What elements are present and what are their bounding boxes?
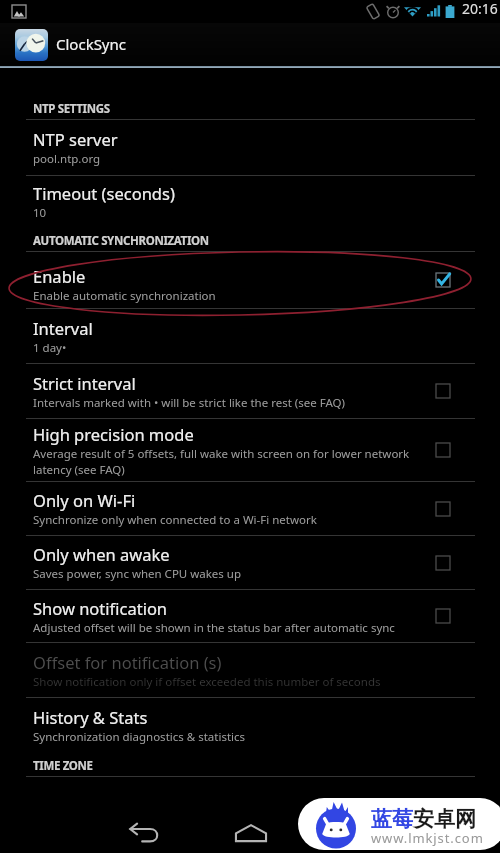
staticText: TIME ZONE <box>33 758 93 774</box>
button[interactable]: Only when awake <box>436 536 500 589</box>
staticText: Saves power, sync when CPU wakes up <box>33 566 242 582</box>
button[interactable]: Timeout (seconds) <box>0 176 500 227</box>
staticText: Timeout (seconds) <box>33 182 175 204</box>
staticText: NTP SETTINGS <box>33 101 110 117</box>
button[interactable]: Only on Wi-Fi <box>436 482 500 535</box>
button[interactable]: Back <box>116 812 172 853</box>
staticText: High precision mode <box>33 423 194 445</box>
button[interactable]: Home <box>223 812 279 853</box>
staticText: 10 <box>33 205 47 221</box>
button[interactable]: Only when awake <box>0 536 500 589</box>
staticText: 蓝莓 <box>371 806 413 832</box>
staticText: Average result of 5 offsets, full wake w… <box>33 446 428 477</box>
button[interactable]: Show notification <box>0 590 500 642</box>
button[interactable]: High precision mode <box>0 419 500 481</box>
button[interactable]: Strict interval <box>436 364 500 418</box>
staticText: Only when awake <box>33 543 170 565</box>
staticText: NTP server <box>33 128 118 150</box>
button[interactable]: High precision mode <box>436 419 500 481</box>
staticText: Show notification only if offset exceede… <box>33 674 381 690</box>
button[interactable]: History & Stats <box>0 698 500 752</box>
button[interactable]: Show notification <box>436 590 500 642</box>
staticText: Interval <box>33 317 93 339</box>
staticText: Enable automatic synchronization <box>33 288 216 304</box>
button[interactable]: Only on Wi-Fi <box>0 482 500 535</box>
staticText: AUTOMATIC SYNCHRONIZATION <box>33 233 209 249</box>
staticText: 20:16 <box>462 0 498 18</box>
staticText: Show notification <box>33 597 168 619</box>
staticText: History & Stats <box>33 706 148 728</box>
staticText: pool.ntp.org <box>33 151 101 167</box>
staticText: Enable <box>33 265 86 287</box>
staticText: 安卓网 <box>413 806 476 832</box>
button[interactable]: Strict interval <box>0 364 500 418</box>
button[interactable]: NTP server <box>0 120 500 175</box>
staticText: Strict interval <box>33 372 136 394</box>
staticText: ClockSync <box>56 34 126 54</box>
staticText: Synchronize only when connected to a Wi-… <box>33 512 317 528</box>
button[interactable]: Interval <box>0 309 500 363</box>
staticText: Synchronization diagnostics & statistics <box>33 729 246 745</box>
staticText: www.lmkjst.com <box>371 829 484 847</box>
staticText: Adjusted offset will be shown in the sta… <box>33 620 395 636</box>
staticText: Offset for notification (s) <box>33 651 222 673</box>
staticText: Intervals marked with • will be strict l… <box>33 395 346 411</box>
button[interactable]: Enable <box>0 252 500 308</box>
staticText: Only on Wi-Fi <box>33 489 136 511</box>
button[interactable]: Offset for notification (s) <box>0 643 500 697</box>
staticText: 1 day• <box>33 340 67 356</box>
button[interactable]: Enable <box>436 252 500 308</box>
